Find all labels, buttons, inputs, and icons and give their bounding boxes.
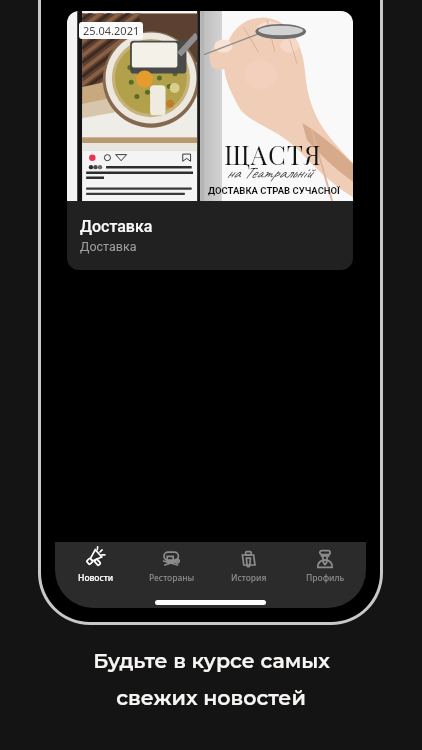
- staticText: Рестораны: [149, 572, 195, 584]
- staticText: ЩАСТЯ: [224, 137, 322, 172]
- staticText: Доставка: [80, 217, 153, 236]
- other: Рестораны: [162, 549, 182, 569]
- other: Профиль: [315, 549, 335, 569]
- staticText: на Театральній: [226, 163, 312, 183]
- button[interactable]: История: [213, 545, 285, 584]
- staticText: свежих новостей: [116, 685, 306, 710]
- button[interactable]: Новости: [60, 545, 132, 584]
- staticText: 25.04.2021: [83, 23, 140, 38]
- other: Новости: [86, 549, 106, 569]
- other: История: [239, 549, 259, 569]
- button[interactable]: Рестораны: [136, 545, 208, 584]
- staticText: Профиль: [306, 572, 345, 584]
- staticText: ДОСТАВКА СТРАВ СУЧАСНОЇ: [208, 185, 340, 196]
- staticText: Доставка: [80, 239, 137, 254]
- button[interactable]: 25.04.2021: [67, 11, 353, 270]
- staticText: История: [231, 572, 267, 584]
- staticText: Новости: [78, 572, 114, 584]
- button[interactable]: Профиль: [289, 545, 361, 584]
- staticText: Будьте в курсе самых: [93, 648, 330, 673]
